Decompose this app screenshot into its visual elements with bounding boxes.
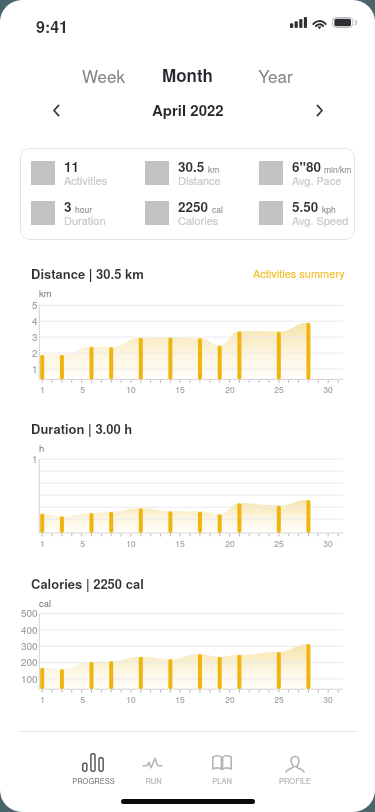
staticText: 15 bbox=[175, 537, 185, 549]
staticText: hour bbox=[75, 203, 93, 215]
staticText: km bbox=[39, 286, 52, 300]
staticText: Activities summery bbox=[253, 265, 345, 281]
staticText: Activities bbox=[64, 172, 108, 188]
button[interactable]: RUN bbox=[123, 748, 183, 786]
staticText: 15 bbox=[175, 693, 185, 705]
staticText: Week bbox=[82, 63, 125, 87]
staticText: 5 bbox=[80, 693, 85, 705]
staticText: 11 bbox=[64, 157, 80, 176]
staticText: RUN bbox=[145, 775, 162, 786]
staticText: 25 bbox=[274, 537, 284, 549]
staticText: 3 bbox=[64, 197, 72, 216]
staticText: PROGRESS bbox=[72, 775, 115, 786]
button[interactable]: Previous month bbox=[44, 98, 68, 122]
staticText: 4 bbox=[32, 314, 38, 328]
staticText: 200 bbox=[21, 655, 38, 669]
staticText: 6"80 bbox=[292, 157, 321, 176]
button[interactable]: PROGRESS bbox=[63, 748, 123, 786]
button[interactable]: 11 bbox=[20, 148, 355, 240]
staticText: 5 bbox=[32, 298, 38, 312]
staticText: 30 bbox=[323, 693, 333, 705]
staticText: PROFILE bbox=[279, 775, 311, 786]
staticText: cal bbox=[39, 596, 52, 610]
staticText: Distance bbox=[178, 172, 221, 188]
staticText: 10 bbox=[126, 383, 136, 395]
staticText: PLAN bbox=[212, 775, 232, 786]
staticText: 400 bbox=[21, 623, 38, 637]
staticText: cal bbox=[212, 203, 223, 215]
button[interactable]: Year bbox=[243, 62, 307, 88]
staticText: 1 bbox=[32, 362, 38, 376]
staticText: 500 bbox=[21, 606, 38, 620]
staticText: Duration | 3.00 h bbox=[31, 419, 133, 438]
staticText: min/km bbox=[324, 163, 352, 175]
staticText: 20 bbox=[225, 537, 235, 549]
staticText: 15 bbox=[175, 383, 185, 395]
button[interactable]: PLAN bbox=[192, 748, 252, 786]
staticText: 2 bbox=[32, 346, 38, 360]
staticText: 1 bbox=[40, 537, 45, 549]
staticText: 20 bbox=[225, 693, 235, 705]
staticText: 300 bbox=[21, 639, 38, 653]
staticText: 100 bbox=[21, 672, 38, 686]
staticText: Calories | 2250 cal bbox=[31, 574, 144, 593]
button[interactable]: Month bbox=[155, 62, 219, 88]
staticText: 30 bbox=[323, 383, 333, 395]
staticText: 5 bbox=[80, 383, 85, 395]
staticText: 2250 bbox=[178, 197, 209, 216]
staticText: Year bbox=[258, 63, 293, 87]
staticText: 9:41 bbox=[36, 15, 69, 38]
staticText: 10 bbox=[126, 693, 136, 705]
staticText: Distance | 30.5 km bbox=[31, 264, 144, 283]
button[interactable]: PROFILE bbox=[265, 748, 325, 786]
staticText: 1 bbox=[32, 452, 38, 466]
staticText: April 2022 bbox=[152, 99, 224, 120]
staticText: 1 bbox=[40, 383, 45, 395]
staticText: kph bbox=[322, 203, 336, 215]
staticText: Calories bbox=[178, 212, 219, 228]
staticText: 30 bbox=[323, 537, 333, 549]
staticText: 3 bbox=[32, 330, 38, 344]
staticText: h bbox=[39, 441, 45, 455]
staticText: 30.5 bbox=[178, 157, 205, 176]
staticText: 5.50 bbox=[292, 197, 319, 216]
staticText: Duration bbox=[64, 212, 106, 228]
staticText: 20 bbox=[225, 383, 235, 395]
staticText: Avg. Pace bbox=[292, 172, 342, 188]
button[interactable]: Week bbox=[71, 62, 135, 88]
staticText: Avg. Speed bbox=[292, 212, 349, 228]
staticText: 25 bbox=[274, 693, 284, 705]
staticText: km bbox=[208, 163, 220, 175]
staticText: Month bbox=[162, 63, 213, 87]
staticText: 1 bbox=[40, 693, 45, 705]
button[interactable]: Next month bbox=[307, 98, 331, 122]
staticText: 5 bbox=[80, 537, 85, 549]
staticText: 25 bbox=[274, 383, 284, 395]
button[interactable]: Activities summery bbox=[253, 265, 345, 281]
staticText: 10 bbox=[126, 537, 136, 549]
